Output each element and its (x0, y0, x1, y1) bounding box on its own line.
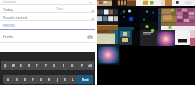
button[interactable]: K (61, 75, 69, 84)
button[interactable]: Y (41, 61, 50, 70)
staticText: H (48, 78, 51, 82)
button[interactable]: E (17, 61, 25, 70)
button[interactable]: A (3, 75, 12, 84)
staticText: A (7, 78, 9, 82)
button[interactable]: D (21, 75, 29, 84)
button[interactable]: P (77, 61, 86, 70)
button[interactable]: Feeds (0, 30, 95, 43)
staticText: I (63, 64, 64, 68)
staticText: Today (3, 7, 13, 12)
staticText: G (40, 78, 43, 82)
staticText: J (57, 78, 58, 82)
button[interactable]: H (45, 75, 53, 84)
button[interactable]: Today (0, 5, 95, 13)
staticText: PHOTOS (3, 24, 15, 28)
staticText: U (53, 64, 56, 68)
button[interactable]: ⌫ (86, 61, 94, 70)
staticText: Y (45, 64, 47, 68)
button[interactable]: L (69, 75, 77, 84)
staticText: W (12, 64, 15, 68)
staticText: ⌫ (88, 64, 93, 67)
button[interactable]: J (53, 75, 61, 84)
staticText: O (71, 64, 74, 68)
staticText: D (24, 78, 27, 82)
staticText: Location (3, 0, 16, 4)
button[interactable]: R (25, 61, 33, 70)
staticText: L (72, 78, 74, 82)
other: Expand (88, 0, 93, 5)
staticText: Next (82, 78, 89, 82)
button[interactable]: S (12, 75, 21, 84)
button[interactable]: I (59, 61, 68, 70)
button[interactable]: O (68, 61, 77, 70)
button[interactable]: G (37, 75, 45, 84)
button[interactable]: F (29, 75, 37, 84)
staticText: E (20, 64, 22, 68)
button[interactable]: U (50, 61, 59, 70)
staticText: Q (4, 64, 7, 68)
staticText: R (28, 64, 30, 68)
staticText: K (64, 78, 66, 82)
staticText: Time (56, 7, 63, 11)
button[interactable] (97, 0, 195, 85)
button[interactable]: Next (77, 75, 93, 84)
button[interactable]: T (33, 61, 41, 70)
button[interactable]: People invited (0, 13, 95, 21)
staticText: S (16, 78, 18, 82)
staticText: P (81, 64, 83, 68)
button[interactable]: W (9, 61, 17, 70)
button[interactable]: Q (1, 61, 9, 70)
staticText: T (36, 64, 38, 68)
staticText: Feeds (3, 34, 13, 39)
staticText: People invited (3, 15, 27, 20)
other: Add photo (87, 34, 93, 40)
button[interactable]: Location (0, 0, 95, 5)
staticText: F (32, 78, 34, 82)
